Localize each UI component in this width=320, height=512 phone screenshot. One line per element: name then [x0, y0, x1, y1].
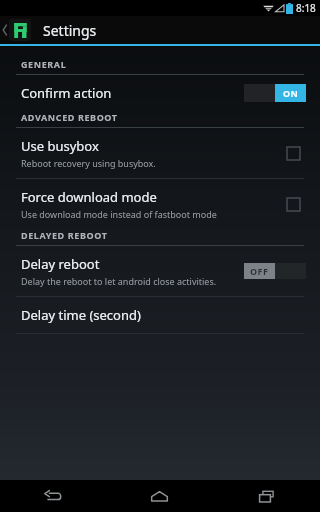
staticText: 8:18 [296, 1, 316, 15]
button[interactable]: Checkbox, not checked [280, 140, 306, 166]
staticText: ON [283, 87, 299, 99]
staticText: Confirm action [21, 84, 112, 102]
button[interactable]: Checkbox, not checked [280, 191, 306, 217]
staticText: Force download mode [21, 188, 157, 206]
button[interactable]: Delay reboot [0, 246, 320, 296]
staticText: Use download mode instead of fastboot mo… [21, 208, 217, 220]
button[interactable]: Confirm action [0, 75, 320, 111]
staticText: Delay the reboot to let android close ac… [21, 275, 217, 287]
button[interactable]: Delay time (second) [0, 297, 320, 333]
staticText: GENERAL [21, 58, 67, 70]
button[interactable]: Toggle off [244, 263, 306, 279]
staticText: Reboot recovery using busybox. [21, 157, 156, 169]
button[interactable]: Recent apps [213, 480, 320, 512]
button[interactable]: Force download mode [0, 179, 320, 229]
button[interactable]: Navigate up [0, 19, 33, 41]
staticText: Delay time (second) [21, 306, 141, 324]
staticText: ADVANCED REBOOT [21, 111, 118, 123]
button[interactable]: Back [0, 480, 106, 512]
button[interactable]: Toggle on [244, 84, 306, 102]
staticText: Delay reboot [21, 255, 100, 273]
button[interactable]: Home [106, 480, 213, 512]
staticText: Settings [43, 21, 97, 40]
staticText: DELAYED REBOOT [21, 229, 108, 241]
button[interactable]: Use busybox [0, 128, 320, 178]
staticText: Use busybox [21, 137, 99, 155]
staticText: OFF [250, 265, 269, 277]
